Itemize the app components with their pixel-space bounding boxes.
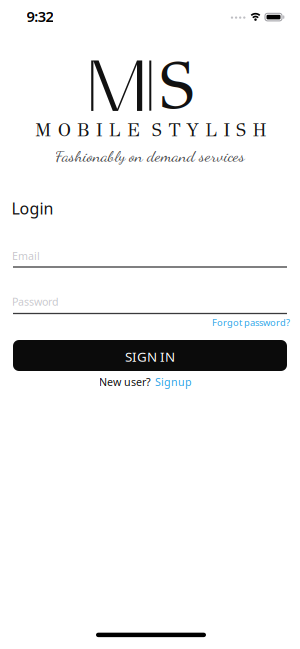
staticText: E	[127, 119, 140, 141]
staticText: SIGN IN	[125, 348, 175, 365]
staticText: L	[109, 119, 121, 141]
staticText: New user?	[99, 375, 151, 389]
staticText: B	[77, 119, 90, 141]
staticText: Y	[186, 119, 199, 141]
staticText: O	[58, 119, 71, 141]
staticText: Email	[12, 249, 40, 263]
staticText: I	[223, 119, 230, 141]
staticText: S	[152, 119, 162, 141]
staticText: L	[205, 119, 217, 141]
staticText: S	[160, 46, 194, 127]
staticText: Signup	[155, 375, 192, 389]
staticText: H	[252, 119, 266, 141]
button[interactable]: Forgot password?	[212, 316, 290, 328]
staticText: T	[168, 119, 180, 141]
staticText: Password	[12, 294, 59, 309]
staticText: Fashionably on demand services	[55, 146, 245, 166]
staticText: Forgot password?	[212, 316, 290, 328]
button[interactable]: SIGN IN	[13, 340, 287, 371]
button[interactable]: Signup	[155, 375, 192, 389]
staticText: S	[236, 119, 246, 141]
staticText: M	[35, 119, 52, 141]
staticText: I	[96, 119, 103, 141]
staticText: 9:32	[27, 7, 53, 26]
staticText: Login	[11, 198, 53, 219]
